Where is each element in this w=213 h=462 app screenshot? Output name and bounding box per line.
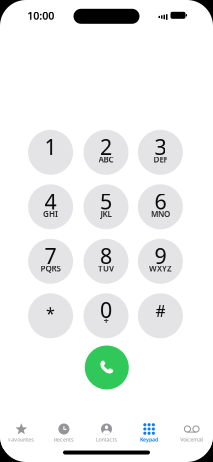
staticText: 8 <box>100 242 112 270</box>
button[interactable]: 7 <box>28 239 73 284</box>
button[interactable]: * <box>28 293 73 338</box>
staticText: Contacts <box>95 436 117 443</box>
button[interactable]: Contacts <box>85 411 128 449</box>
staticText: Voicemail <box>180 436 203 443</box>
staticText: Recents <box>54 436 74 443</box>
staticText: WXYZ <box>149 263 172 274</box>
staticText: 1 <box>45 133 57 161</box>
button[interactable]: 1 <box>28 130 73 175</box>
button[interactable]: Call <box>85 345 129 389</box>
button[interactable]: Voicemail <box>170 411 213 449</box>
button[interactable]: 9 <box>138 239 183 284</box>
staticText: 2 <box>100 133 112 161</box>
staticText: JKL <box>100 209 111 219</box>
staticText: Favourites <box>8 436 34 443</box>
staticText: 3 <box>154 133 166 161</box>
button[interactable]: # <box>138 293 183 338</box>
button[interactable]: 0 <box>83 293 128 338</box>
staticText: + <box>103 314 108 327</box>
staticText: * <box>46 302 55 324</box>
staticText: 10:00 <box>27 8 54 23</box>
staticText: PQRS <box>41 263 61 274</box>
staticText: 6 <box>154 187 166 215</box>
button[interactable]: 8 <box>83 239 128 284</box>
staticText: 7 <box>45 242 57 270</box>
staticText: DEF <box>153 154 167 165</box>
button[interactable]: 4 <box>28 184 73 229</box>
staticText: 4 <box>45 187 57 215</box>
button[interactable]: Keypad <box>128 411 170 449</box>
button[interactable]: 3 <box>138 130 183 175</box>
button[interactable]: Recents <box>43 411 85 449</box>
staticText: TUV <box>98 263 114 274</box>
staticText: 9 <box>154 242 166 270</box>
staticText: ABC <box>98 154 113 165</box>
button[interactable]: 2 <box>83 130 128 175</box>
staticText: Keypad <box>140 436 158 443</box>
staticText: 0 <box>100 295 112 324</box>
button[interactable]: Favourites <box>0 411 43 449</box>
staticText: # <box>155 300 165 321</box>
button[interactable]: 6 <box>138 184 183 229</box>
button[interactable]: 5 <box>83 184 128 229</box>
staticText: MNO <box>151 209 170 219</box>
staticText: 5 <box>100 187 112 215</box>
staticText: GHI <box>43 209 58 219</box>
